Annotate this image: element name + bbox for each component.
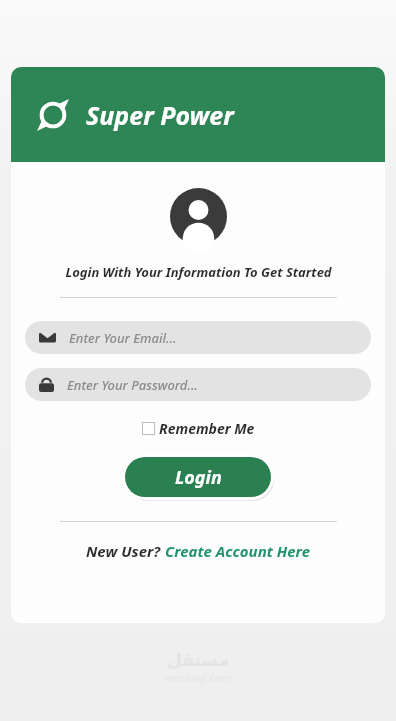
button[interactable]: Remember Me xyxy=(140,417,257,440)
staticText: Login With Your Information To Get Start… xyxy=(65,263,332,281)
staticText: Enter Your Email... xyxy=(69,329,177,347)
staticText: New User? xyxy=(86,541,165,561)
staticText: Login xyxy=(175,465,222,490)
button[interactable]: Enter Your Password... xyxy=(25,368,371,401)
staticText: مستقل xyxy=(167,650,230,670)
staticText: Create Account Here xyxy=(165,541,311,561)
button[interactable]: Enter Your Email... xyxy=(25,321,371,354)
button[interactable]: Create Account Here xyxy=(165,541,311,561)
other: User avatar xyxy=(170,188,227,245)
staticText: Super Power xyxy=(86,98,234,132)
staticText: Enter Your Password... xyxy=(67,376,198,394)
button[interactable]: Login xyxy=(122,454,274,500)
staticText: Remember Me xyxy=(159,419,255,438)
